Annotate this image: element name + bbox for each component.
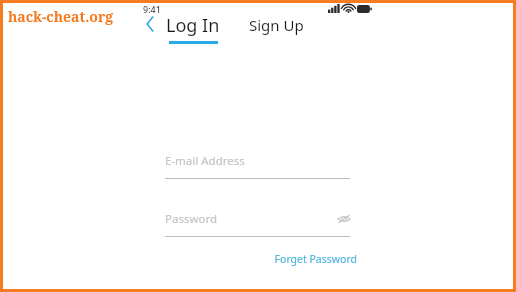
button[interactable]: E-mail Address	[165, 152, 350, 179]
staticText: Log In	[166, 13, 220, 38]
staticText: hack-cheat.org	[8, 7, 114, 26]
button[interactable]: Log In	[166, 13, 220, 44]
staticText: Sign Up	[249, 15, 304, 35]
button[interactable]: Forget Password	[274, 252, 357, 266]
staticText: 9:41	[143, 3, 161, 15]
button[interactable]: Back	[140, 14, 160, 34]
button[interactable]: Sign Up	[249, 15, 304, 35]
button[interactable]: Password	[165, 210, 350, 237]
staticText: Password	[165, 211, 218, 227]
staticText: E-mail Address	[165, 153, 245, 169]
button[interactable]: Show password	[334, 210, 354, 228]
staticText: Forget Password	[274, 252, 357, 266]
